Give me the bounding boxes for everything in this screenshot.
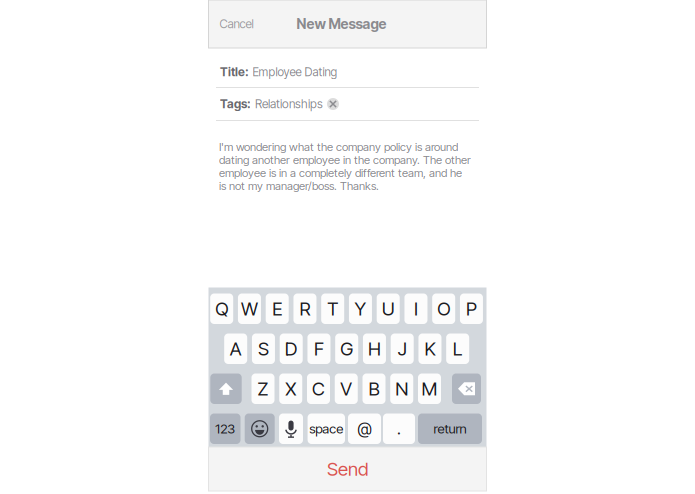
staticText: return	[433, 421, 466, 437]
staticText: .	[397, 419, 401, 438]
staticText: M	[421, 377, 437, 400]
staticText: P	[466, 297, 477, 320]
staticText: Employee Dating	[252, 65, 337, 79]
button[interactable]: F	[307, 333, 330, 364]
button[interactable]: V	[335, 373, 358, 404]
button[interactable]: @	[348, 413, 381, 444]
button[interactable]: .	[383, 413, 415, 444]
staticText: R	[299, 297, 310, 320]
button[interactable]: E	[266, 293, 289, 324]
staticText: C	[312, 377, 325, 400]
button[interactable]: Cancel	[208, 4, 263, 44]
button[interactable]: U	[377, 293, 400, 324]
staticText: Title:	[220, 65, 249, 79]
button[interactable]: H	[363, 333, 386, 364]
staticText: Relationships	[255, 97, 323, 111]
staticText: V	[340, 377, 352, 400]
button[interactable]: S	[252, 333, 275, 364]
staticText: D	[285, 337, 298, 360]
button[interactable]: J	[391, 333, 414, 364]
staticText: Z	[257, 377, 268, 400]
staticText: L	[453, 337, 463, 360]
button[interactable]: N	[390, 373, 413, 404]
staticText: N	[395, 377, 408, 400]
button[interactable]: A	[224, 333, 247, 364]
button[interactable]: Y	[349, 293, 372, 324]
staticText: A	[230, 337, 242, 360]
staticText: J	[398, 337, 407, 360]
staticText: I	[414, 297, 418, 320]
button[interactable]: W	[238, 293, 261, 324]
button[interactable]: R	[293, 293, 316, 324]
button[interactable]: return	[418, 413, 482, 444]
staticText: Send	[327, 458, 368, 480]
button[interactable]: Dictation	[279, 413, 303, 444]
button[interactable]: T	[321, 293, 344, 324]
staticText: 123	[215, 421, 235, 437]
button[interactable]: M	[418, 373, 441, 404]
staticText: F	[314, 337, 324, 360]
button[interactable]: X	[279, 373, 302, 404]
button[interactable]: P	[460, 293, 483, 324]
staticText: W	[241, 297, 258, 320]
button[interactable]: Z	[251, 373, 274, 404]
staticText: B	[368, 377, 379, 400]
button[interactable]: K	[418, 333, 441, 364]
staticText: I'm wondering what the company policy is…	[219, 140, 471, 193]
button[interactable]: Delete	[452, 373, 481, 404]
staticText: @	[357, 419, 371, 438]
staticText: Q	[215, 297, 228, 320]
staticText: K	[424, 337, 435, 360]
button[interactable]: I	[404, 293, 427, 324]
button[interactable]: G	[335, 333, 358, 364]
button[interactable]: Shift	[210, 373, 242, 404]
button[interactable]: Q	[210, 293, 233, 324]
staticText: O	[437, 297, 450, 320]
button[interactable]: 123	[210, 413, 240, 444]
staticText: Y	[354, 297, 366, 320]
staticText: space	[309, 421, 343, 437]
staticText: Tags:	[220, 97, 251, 111]
button[interactable]: O	[432, 293, 455, 324]
button[interactable]: B	[362, 373, 385, 404]
button[interactable]: L	[446, 333, 469, 364]
button[interactable]: space	[308, 413, 345, 444]
staticText: S	[258, 337, 269, 360]
staticText: E	[272, 297, 282, 320]
button[interactable]: D	[280, 333, 303, 364]
staticText: T	[327, 297, 338, 320]
staticText: G	[340, 337, 353, 360]
staticText: U	[382, 297, 395, 320]
button[interactable]: C	[307, 373, 330, 404]
staticText: New Message	[296, 15, 386, 32]
staticText: H	[368, 337, 381, 360]
button[interactable]: Send	[208, 447, 486, 491]
button[interactable]: Emoji	[245, 413, 275, 444]
staticText: Cancel	[219, 17, 253, 31]
staticText: X	[285, 377, 296, 400]
